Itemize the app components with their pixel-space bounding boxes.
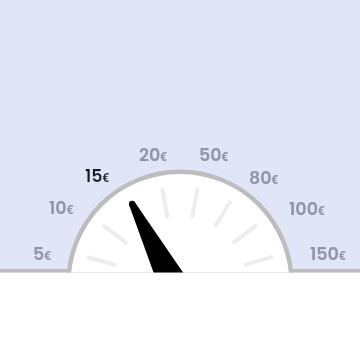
- button[interactable]: 80 euro: [249, 166, 279, 191]
- button[interactable]: 15 euro: [85, 164, 110, 189]
- button[interactable]: 100 euro: [289, 197, 325, 222]
- button[interactable]: Price gauge, 15 euro selected: [0, 0, 360, 340]
- button[interactable]: 150 euro: [310, 242, 346, 267]
- button[interactable]: 20 euro: [139, 143, 167, 168]
- button[interactable]: 10 euro: [49, 196, 74, 221]
- button[interactable]: 5 euro: [33, 242, 51, 267]
- button[interactable]: 50 euro: [199, 143, 229, 168]
